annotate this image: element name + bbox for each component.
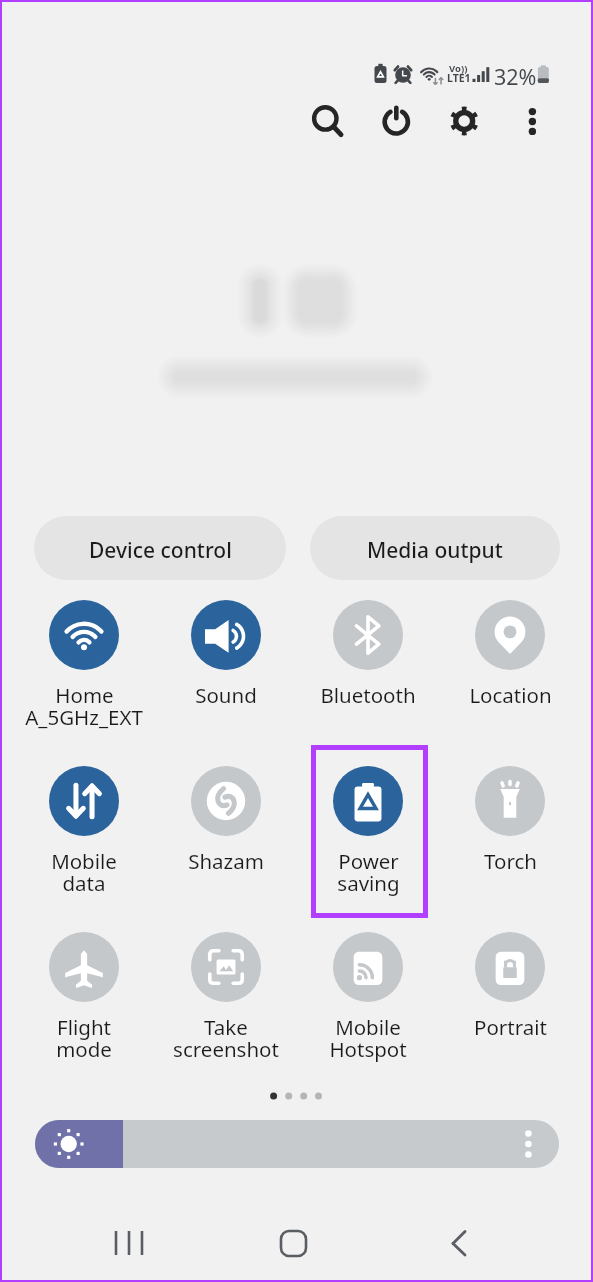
staticText: Shazam [188, 847, 264, 875]
staticText: Bluetooth [320, 681, 416, 709]
staticText: Device control [89, 536, 232, 565]
staticText: Torch [484, 847, 537, 875]
button[interactable]: Back [409, 1208, 509, 1278]
staticText: mode [56, 1035, 112, 1063]
staticText: Home [55, 681, 114, 709]
staticText: Sound [195, 681, 257, 709]
staticText: Mobile [335, 1013, 401, 1041]
staticText: 32% [494, 62, 537, 91]
button[interactable]: Location [439, 600, 581, 722]
button[interactable]: Torch [439, 766, 581, 888]
button[interactable]: Flight [13, 932, 155, 1054]
button[interactable]: Portrait [439, 932, 581, 1054]
button[interactable]: Home [13, 600, 155, 722]
staticText: saving [337, 869, 400, 897]
button[interactable]: Bluetooth [297, 600, 439, 722]
staticText: Location [469, 681, 552, 709]
staticText: Vo)) [449, 62, 468, 75]
staticText: Flight [57, 1013, 111, 1041]
staticText: Mobile [51, 847, 117, 875]
staticText: screenshot [173, 1035, 279, 1063]
staticText: Media output [367, 536, 503, 565]
button[interactable]: Device control [34, 516, 286, 580]
staticText: Portrait [474, 1013, 547, 1041]
button[interactable]: Mobile [297, 932, 439, 1054]
staticText: Hotspot [329, 1035, 407, 1063]
button[interactable]: Shazam [155, 766, 297, 888]
button[interactable] [35, 1120, 559, 1168]
button[interactable]: Home [244, 1208, 344, 1278]
button[interactable]: Recents [80, 1208, 180, 1278]
staticText: A_5GHz_EXT [25, 703, 143, 731]
button[interactable]: Power [297, 766, 439, 888]
staticText: Power [338, 847, 399, 875]
button[interactable]: Mobile [13, 766, 155, 888]
staticText: Take [204, 1013, 248, 1041]
staticText: LTE1 [447, 71, 471, 85]
staticText: data [62, 869, 106, 897]
button[interactable]: Sound [155, 600, 297, 722]
button[interactable]: Media output [310, 516, 560, 580]
button[interactable]: Take [155, 932, 297, 1054]
